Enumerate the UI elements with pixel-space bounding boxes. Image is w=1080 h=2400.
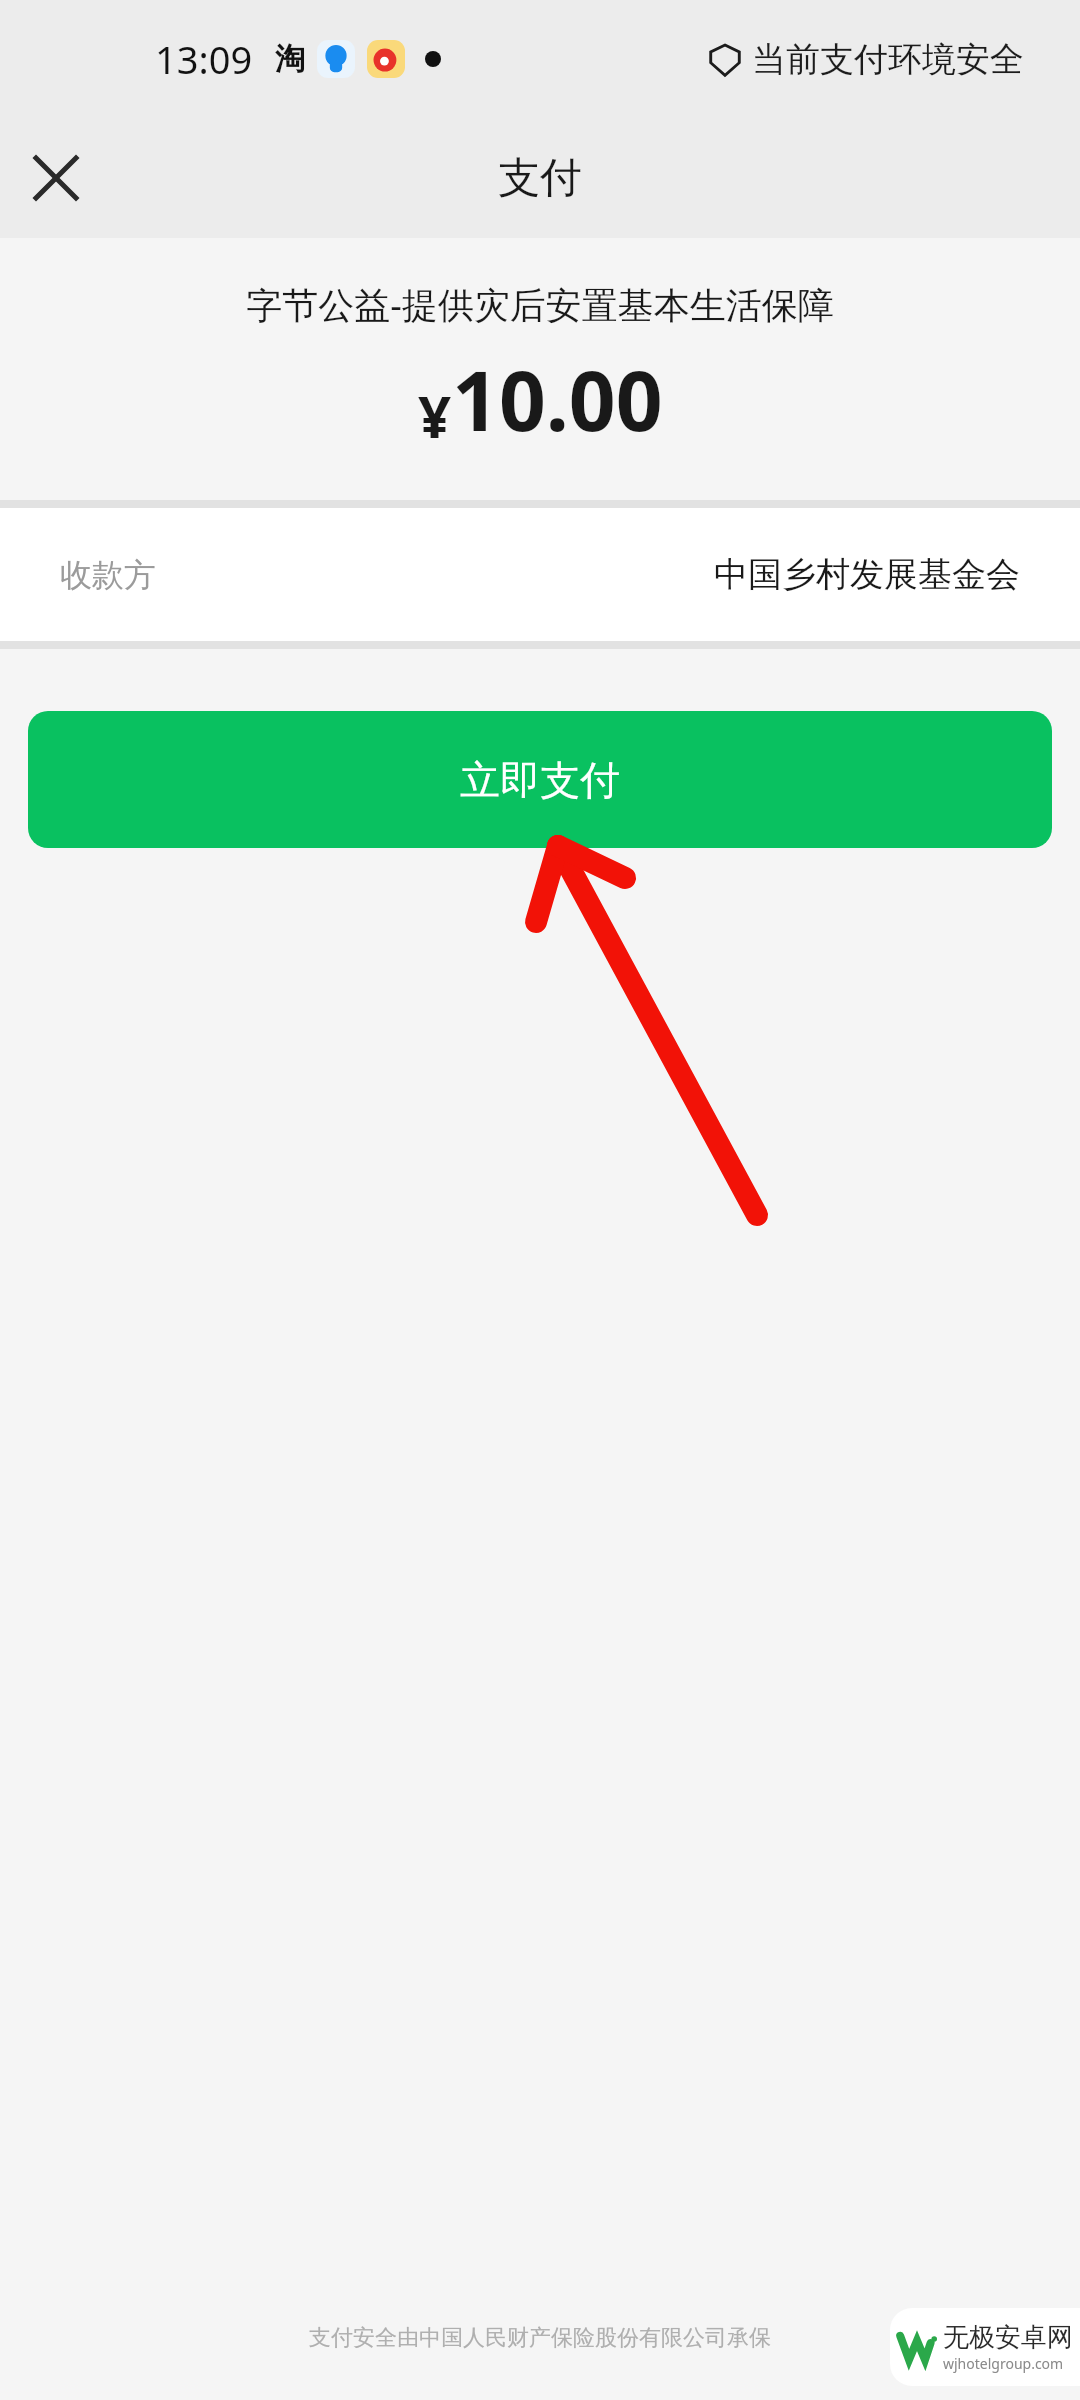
button[interactable]: 立即支付 bbox=[28, 711, 1052, 848]
staticText: 中国乡村发展基金会 bbox=[714, 553, 1020, 596]
staticText: 支付安全由中国人民财产保险股份有限公司承保 bbox=[309, 2324, 771, 2352]
staticText: wjhotelgroup.com bbox=[943, 2354, 1064, 2373]
staticText: 13:09 bbox=[155, 33, 253, 85]
staticText: 无极安卓网 bbox=[943, 2321, 1073, 2354]
staticText: 收款方 bbox=[60, 555, 156, 595]
staticText: 字节公益-提供灾后安置基本生活保障 bbox=[246, 280, 834, 329]
staticText: ¥ bbox=[418, 376, 452, 455]
staticText: 10.00 bbox=[452, 343, 663, 455]
staticText: 淘 bbox=[275, 40, 305, 78]
staticText: 立即支付 bbox=[460, 755, 620, 805]
staticText: 当前支付环境安全 bbox=[752, 38, 1024, 81]
button[interactable]: 关闭 bbox=[20, 142, 92, 214]
staticText: 支付 bbox=[498, 152, 582, 205]
button[interactable]: 收款方 bbox=[0, 508, 1080, 641]
